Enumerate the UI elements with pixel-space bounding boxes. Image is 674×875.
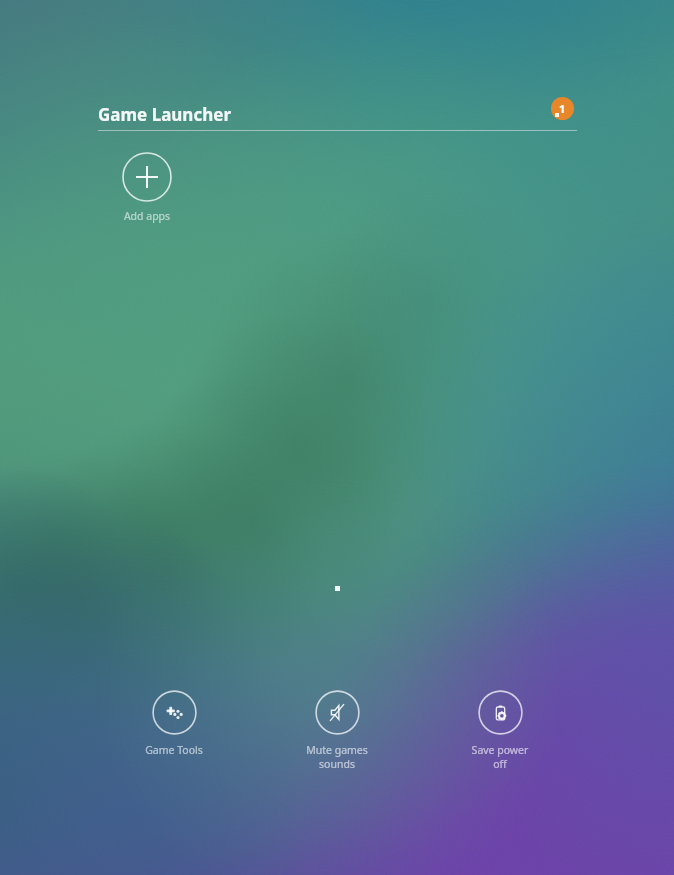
staticText: 1: [559, 101, 566, 116]
button[interactable]: Save power off: [450, 688, 550, 771]
staticText: Game Tools: [124, 743, 224, 757]
staticText: Game Launcher: [98, 103, 231, 126]
button[interactable]: Mute games sounds: [287, 688, 387, 771]
button[interactable]: Add apps: [104, 152, 190, 223]
staticText: Save power off: [450, 743, 550, 771]
button[interactable]: Game Tools: [124, 688, 224, 757]
staticText: Mute games sounds: [287, 743, 387, 771]
button[interactable]: Notifications: [551, 97, 574, 120]
staticText: Add apps: [104, 209, 190, 223]
